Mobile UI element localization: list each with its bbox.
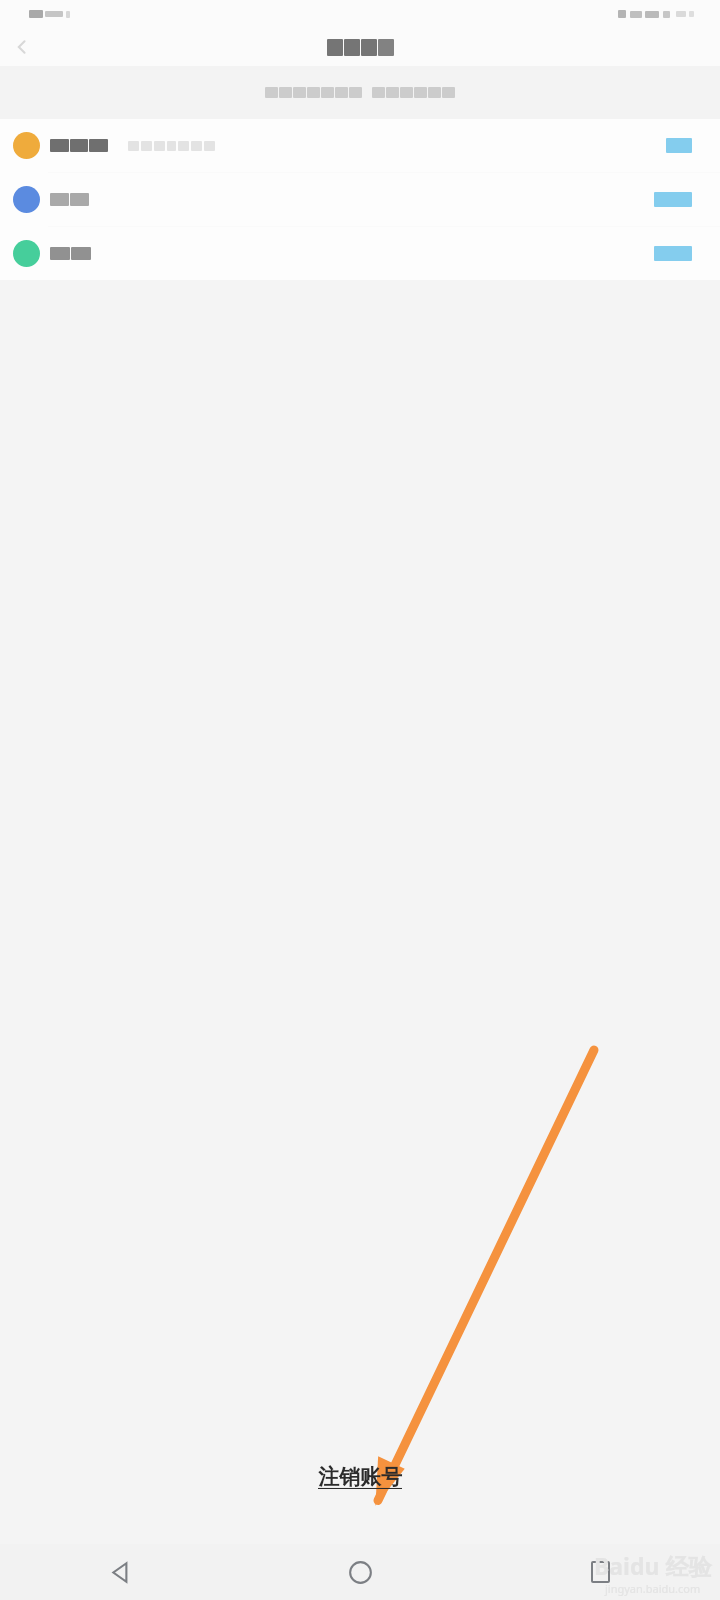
button[interactable]: Recent apps — [480, 1544, 720, 1600]
button[interactable]: Back — [0, 1544, 240, 1600]
button[interactable]: Action — [0, 227, 720, 280]
staticText: Baidu 经验 — [594, 1550, 712, 1581]
staticText: 注销账号 — [318, 1464, 402, 1490]
button[interactable]: Action — [0, 119, 720, 172]
button[interactable]: Action — [650, 242, 696, 265]
button[interactable]: Action — [0, 173, 720, 226]
button[interactable]: Action — [650, 188, 696, 211]
button[interactable]: Action — [662, 134, 696, 157]
button[interactable]: Home — [240, 1544, 480, 1600]
staticText: jingyan.baidu.com — [605, 1581, 701, 1596]
button[interactable]: 注销账号 — [312, 1462, 408, 1492]
button[interactable]: Back — [0, 28, 44, 66]
